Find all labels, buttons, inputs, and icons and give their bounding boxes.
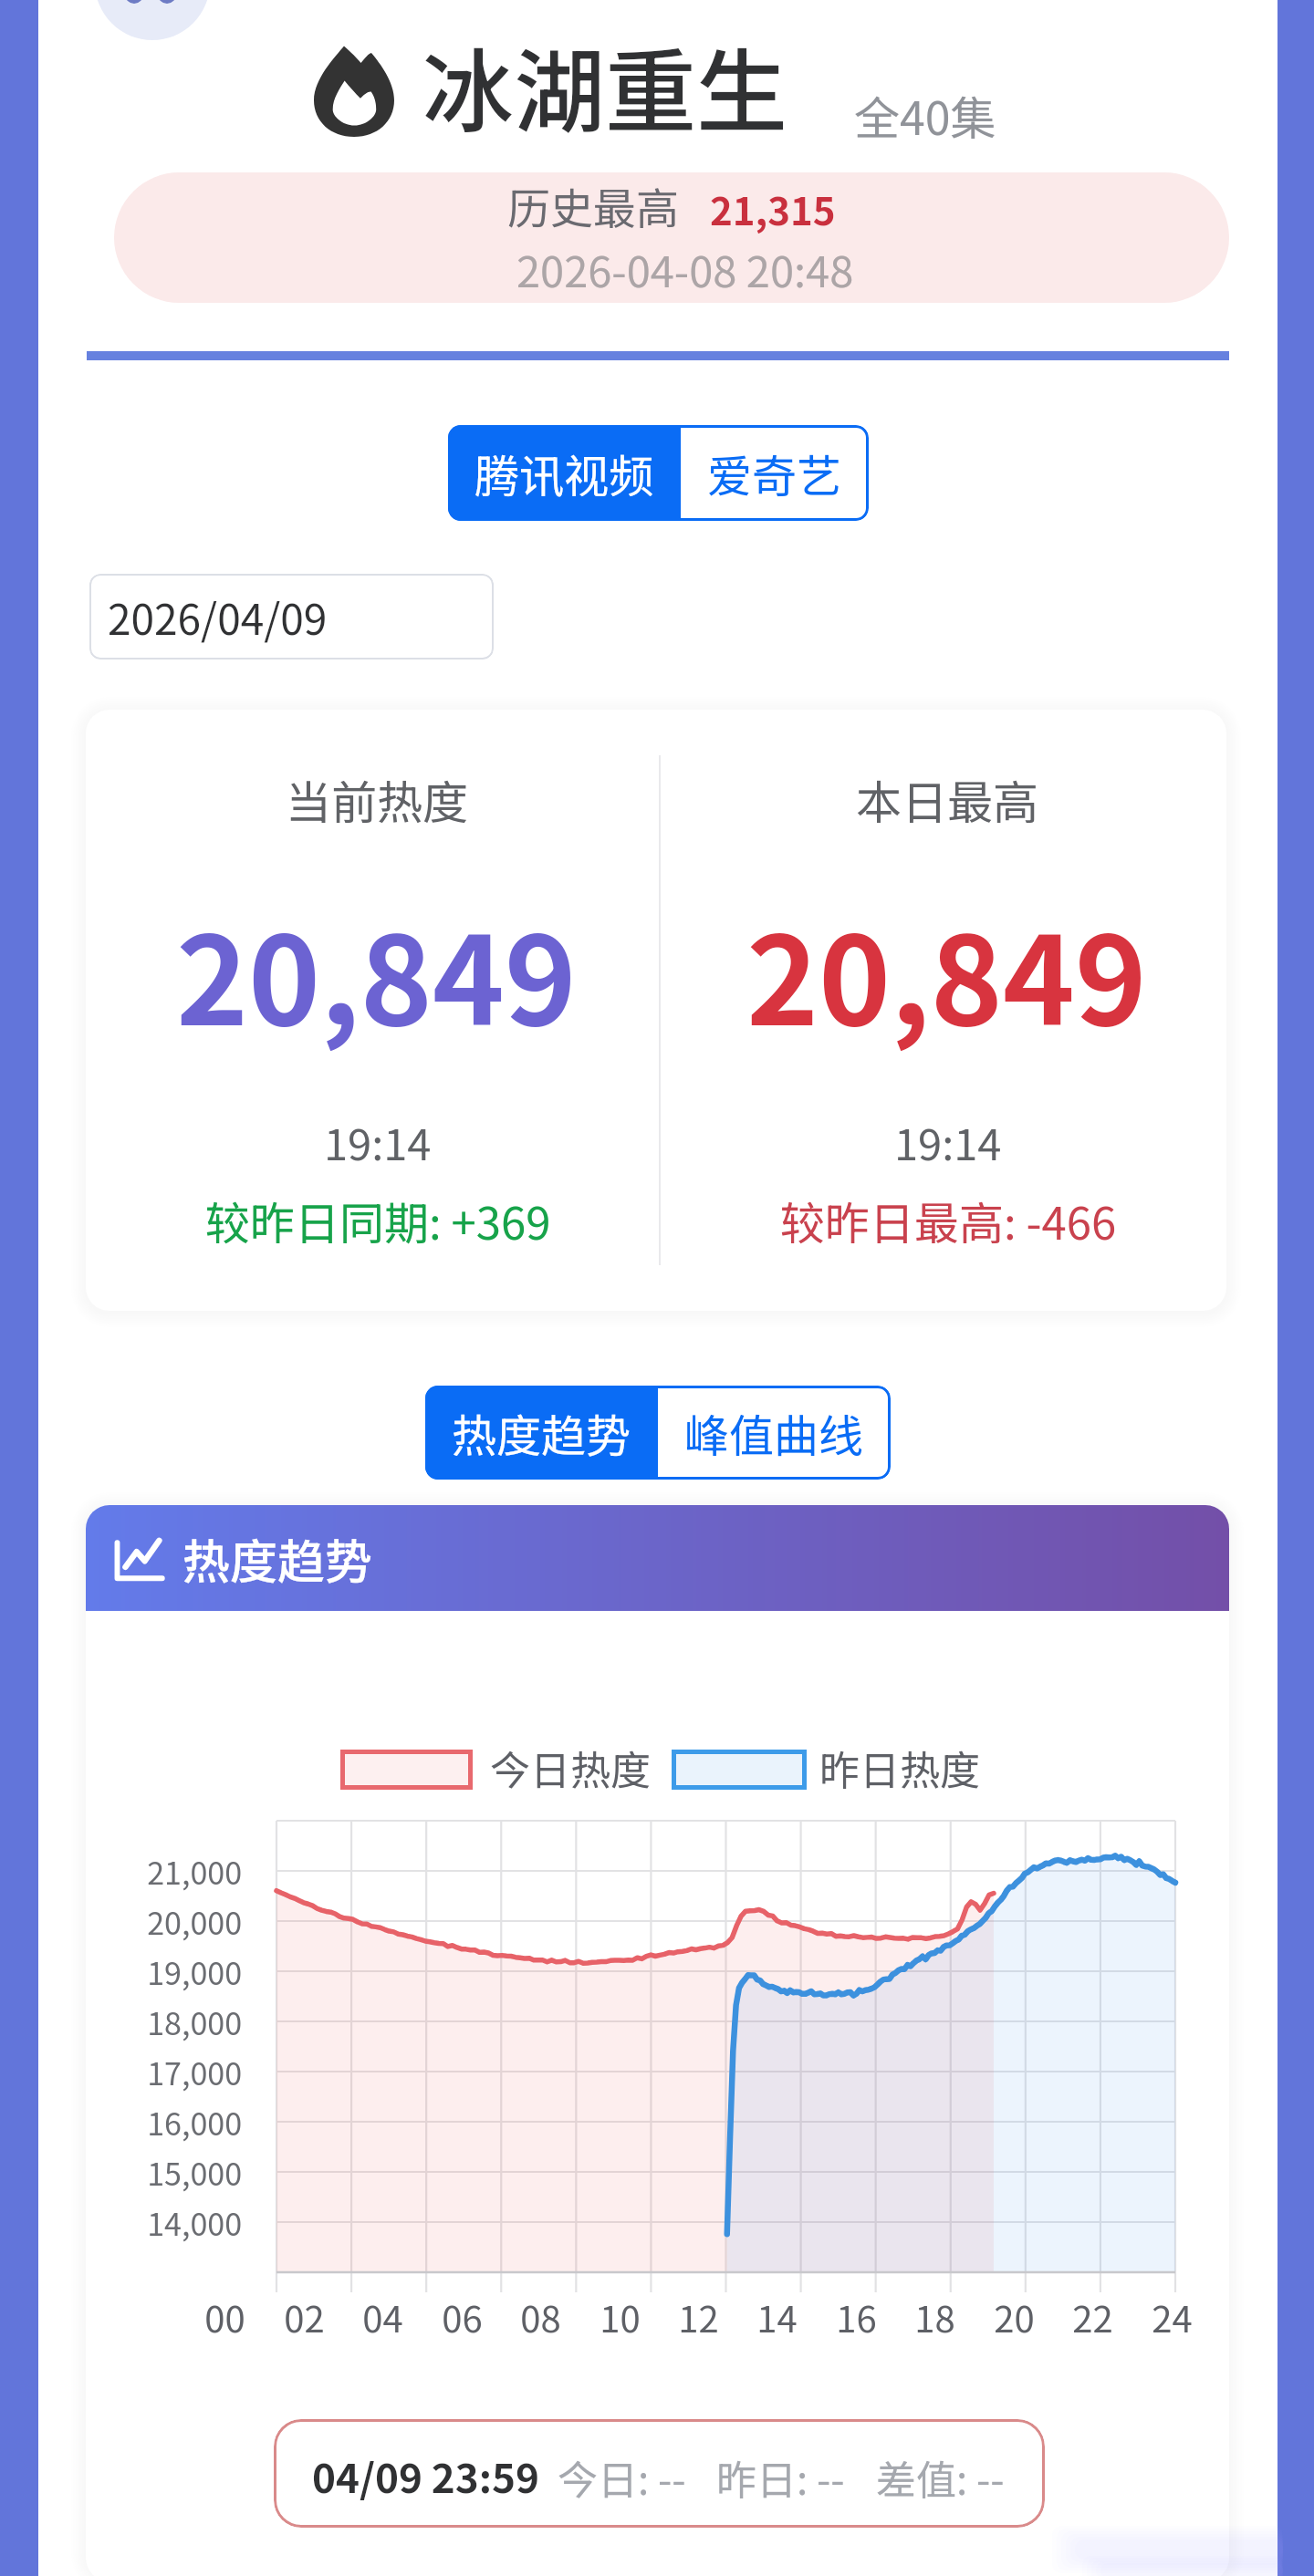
staticText: 今日热度 bbox=[490, 1739, 651, 1797]
staticText: 历史最高 bbox=[507, 174, 679, 236]
staticText: 00 bbox=[204, 2290, 245, 2343]
staticText: 热度趋势 bbox=[452, 1400, 631, 1465]
button[interactable]: 峰值曲线 bbox=[658, 1386, 891, 1480]
button[interactable]: 昨日热度 bbox=[669, 1733, 980, 1802]
staticText: 12 bbox=[678, 2290, 719, 2343]
staticText: 爱奇艺 bbox=[707, 441, 842, 505]
staticText: 2026-04-08 20:48 bbox=[516, 237, 854, 299]
staticText: 21,000 bbox=[147, 1849, 242, 1894]
staticText: 10 bbox=[600, 2290, 641, 2343]
staticText: 16,000 bbox=[147, 2100, 242, 2145]
staticText: 04/09 23:59 bbox=[312, 2446, 539, 2505]
staticText: 18,000 bbox=[147, 2000, 242, 2044]
staticText: 当前热度 bbox=[286, 766, 468, 832]
staticText: 15,000 bbox=[147, 2150, 242, 2195]
staticText: 14 bbox=[756, 2290, 798, 2343]
staticText: 腾讯视频 bbox=[474, 441, 654, 505]
staticText: 22 bbox=[1072, 2290, 1113, 2343]
button[interactable]: 热度趋势 bbox=[425, 1386, 658, 1480]
staticText: 20 bbox=[994, 2290, 1035, 2343]
staticText: 04 bbox=[362, 2290, 403, 2343]
button[interactable]: 今日热度 bbox=[340, 1733, 651, 1802]
staticText: 19,000 bbox=[147, 1949, 242, 1994]
staticText: 今日: -- bbox=[558, 2448, 686, 2507]
staticText: 24 bbox=[1152, 2290, 1193, 2343]
staticText: 本日最高 bbox=[856, 766, 1038, 832]
staticText: 2026/04/09 bbox=[108, 587, 328, 648]
staticText: 20,849 bbox=[176, 884, 577, 1061]
staticText: 17,000 bbox=[147, 2050, 242, 2094]
button[interactable]: 04/09 23:59 bbox=[274, 2419, 1045, 2528]
staticText: 14,000 bbox=[147, 2200, 242, 2245]
staticText: 20,849 bbox=[746, 884, 1147, 1061]
staticText: 全40集 bbox=[854, 82, 996, 148]
staticText: 昨日热度 bbox=[819, 1739, 980, 1797]
button[interactable]: Back to list bbox=[95, 0, 210, 40]
staticText: 较昨日最高: -466 bbox=[780, 1188, 1117, 1252]
staticText: 08 bbox=[520, 2290, 561, 2343]
staticText: 19:14 bbox=[324, 1110, 432, 1172]
button[interactable]: 腾讯视频 bbox=[448, 425, 681, 521]
staticText: 19:14 bbox=[894, 1110, 1002, 1172]
staticText: 较昨日同期: +369 bbox=[205, 1188, 551, 1252]
staticText: 06 bbox=[442, 2290, 483, 2343]
staticText: 冰湖重生 bbox=[422, 19, 787, 151]
staticText: 18 bbox=[914, 2290, 955, 2343]
staticText: 热度趋势 bbox=[182, 1524, 373, 1593]
staticText: 20,000 bbox=[147, 1899, 242, 1944]
staticText: 昨日: -- bbox=[716, 2448, 845, 2507]
staticText: 差值: -- bbox=[876, 2448, 1005, 2507]
staticText: 16 bbox=[836, 2290, 877, 2343]
staticText: 峰值曲线 bbox=[684, 1400, 864, 1465]
button[interactable]: 2026/04/09 bbox=[89, 574, 494, 660]
staticText: 21,315 bbox=[710, 181, 836, 236]
button[interactable]: 爱奇艺 bbox=[681, 425, 869, 521]
button[interactable]: 历史最高 bbox=[114, 172, 1229, 303]
staticText: 02 bbox=[284, 2290, 325, 2343]
